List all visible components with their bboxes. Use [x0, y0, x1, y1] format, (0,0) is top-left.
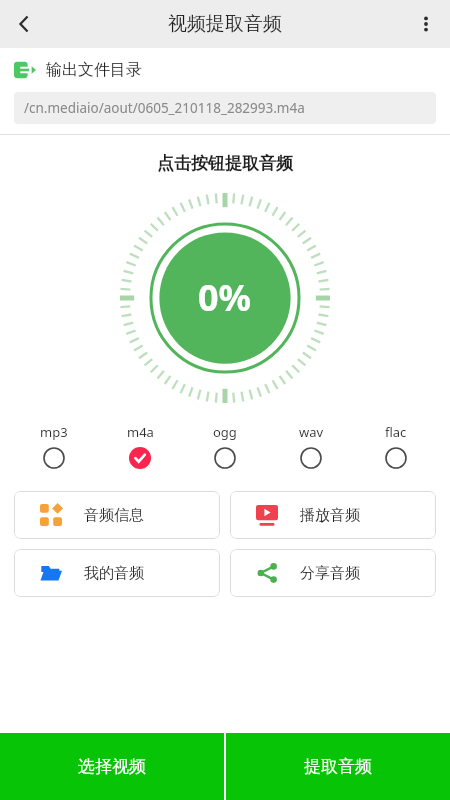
button[interactable]: 音频信息 [14, 491, 220, 539]
button[interactable]: m4a [112, 423, 168, 469]
button[interactable]: ogg [197, 423, 253, 469]
button[interactable]: Back [0, 0, 48, 48]
staticText: 提取音频 [304, 756, 372, 777]
button[interactable]: 我的音频 [14, 549, 220, 597]
staticText: m4a [127, 423, 154, 441]
button[interactable]: More options [402, 0, 450, 48]
staticText: 音频信息 [84, 506, 144, 525]
staticText: 0% [198, 273, 252, 322]
staticText: 分享音频 [300, 564, 360, 583]
button[interactable]: 分享音频 [230, 549, 436, 597]
button[interactable]: mp3 [26, 423, 82, 469]
staticText: 我的音频 [84, 564, 144, 583]
button[interactable]: wav [283, 423, 339, 469]
staticText: 选择视频 [78, 756, 146, 777]
staticText: 点击按钮提取音频 [0, 153, 450, 174]
button[interactable]: 选择视频 [0, 733, 224, 800]
button[interactable]: /cn.mediaio/aout/0605_210118_282993.m4a [14, 92, 436, 124]
button[interactable]: flac [368, 423, 424, 469]
staticText: wav [299, 423, 324, 441]
staticText: 输出文件目录 [46, 60, 142, 80]
staticText: mp3 [40, 423, 68, 441]
button[interactable]: 提取音频 [226, 733, 450, 800]
staticText: /cn.mediaio/aout/0605_210118_282993.m4a [24, 99, 305, 117]
staticText: flac [385, 423, 407, 441]
button[interactable]: 输出文件目录 [0, 48, 450, 92]
staticText: ogg [213, 423, 237, 441]
button[interactable]: 播放音频 [230, 491, 436, 539]
staticText: 播放音频 [300, 506, 360, 525]
staticText: 视频提取音频 [168, 12, 282, 36]
